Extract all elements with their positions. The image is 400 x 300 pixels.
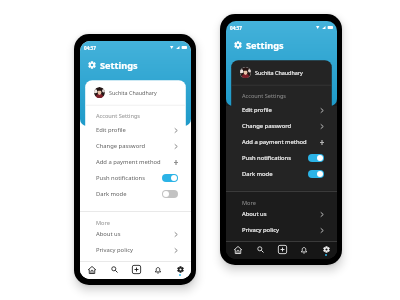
button[interactable]: Add [271,242,293,259]
button[interactable]: Edit profile [226,102,337,118]
staticText: About us [96,230,121,238]
staticText: Account Settings [242,92,287,99]
button[interactable]: Suchita Chaudhary [85,80,186,105]
button[interactable]: Change password [226,118,337,134]
button[interactable]: Home [226,242,249,259]
button[interactable]: Privacy policy [226,222,337,238]
button[interactable]: Push notifications [80,170,191,186]
button[interactable]: Add a payment method [80,154,191,170]
button[interactable]: Suchita Chaudhary [231,60,332,85]
button[interactable]: Home [80,262,103,279]
staticText: Privacy policy [242,226,279,234]
staticText: Edit profile [242,106,272,114]
button[interactable]: Settings [315,242,337,259]
staticText: 04:37 [84,45,96,51]
staticText: More [242,199,256,206]
button[interactable]: On [308,154,324,162]
button[interactable]: Privacy policy [80,242,191,258]
staticText: 04:37 [230,25,242,31]
staticText: Push notifications [96,174,146,182]
staticText: About us [242,210,267,218]
button[interactable]: Settings [169,262,191,279]
staticText: Dark mode [242,170,273,178]
button[interactable]: About us [80,226,191,242]
button[interactable]: Dark mode [80,186,191,202]
button[interactable]: Push notifications [226,150,337,166]
staticText: Privacy policy [96,246,133,254]
staticText: Push notifications [242,154,292,162]
button[interactable]: Notifications [293,242,315,259]
button[interactable]: On [308,170,324,178]
button[interactable]: On [162,174,178,182]
staticText: More [96,219,110,226]
staticText: Suchita Chaudhary [109,89,157,96]
staticText: Account Settings [96,112,141,119]
button[interactable]: Add a payment method [226,134,337,150]
button[interactable]: Notifications [147,262,169,279]
staticText: Settings [100,59,138,72]
staticText: Change password [242,122,292,130]
staticText: Dark mode [96,190,127,198]
button[interactable]: Dark mode [226,166,337,182]
button[interactable]: Edit profile [80,122,191,138]
staticText: Add a payment method [242,138,307,146]
staticText: Suchita Chaudhary [255,69,303,76]
button[interactable]: Search [249,242,271,259]
button[interactable]: Change password [80,138,191,154]
staticText: Change password [96,142,146,150]
button[interactable]: Search [103,262,125,279]
button[interactable]: About us [226,206,337,222]
staticText: Settings [246,39,284,52]
staticText: Add a payment method [96,158,161,166]
button[interactable]: Add [125,262,147,279]
button[interactable]: Off [162,190,178,198]
staticText: Edit profile [96,126,126,134]
